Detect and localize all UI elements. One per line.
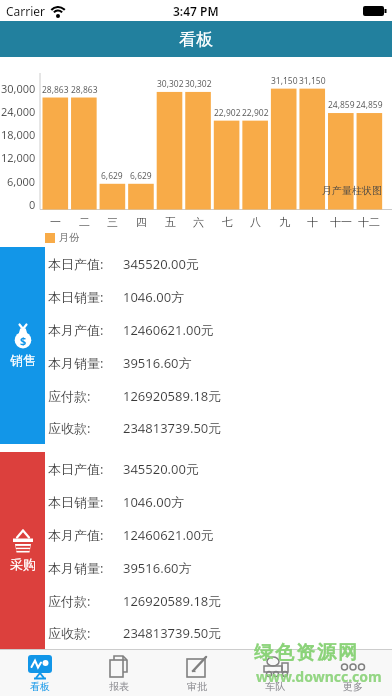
button[interactable]: 采购: [0, 452, 45, 649]
staticText: 十二: [358, 215, 380, 229]
staticText: 五: [165, 215, 176, 229]
button[interactable]: $: [0, 247, 45, 444]
staticText: 234813739.50元: [123, 624, 222, 642]
button[interactable]: 本月产值:: [45, 313, 392, 346]
staticText: 八: [250, 215, 261, 229]
staticText: $: [20, 333, 27, 348]
staticText: 十: [307, 215, 318, 229]
staticText: 车队: [265, 680, 285, 693]
staticText: 二: [79, 215, 90, 229]
staticText: 本月销量:: [48, 559, 104, 577]
button[interactable]: 更多: [314, 650, 392, 696]
staticText: 销售: [10, 352, 36, 368]
staticText: 24,000: [1, 104, 36, 119]
staticText: 3:47 PM: [173, 3, 219, 19]
staticText: 本月产值:: [48, 321, 104, 339]
staticText: 126920589.18元: [123, 592, 222, 610]
staticText: 采购: [10, 556, 36, 572]
button[interactable]: 审批: [158, 650, 236, 696]
button[interactable]: 本月产值:: [45, 518, 392, 551]
staticText: 30,302: [185, 78, 212, 90]
staticText: 30,302: [157, 78, 184, 90]
staticText: 本月产值:: [48, 526, 104, 544]
staticText: 31,150: [299, 75, 326, 87]
staticText: 应付款:: [48, 592, 91, 610]
staticText: 234813739.50元: [123, 419, 222, 437]
staticText: 39516.60方: [123, 559, 192, 577]
staticText: 22,902: [214, 107, 241, 119]
staticText: 28,863: [42, 84, 69, 96]
staticText: 0: [29, 197, 36, 212]
staticText: 30,000: [1, 81, 36, 96]
staticText: 22,902: [242, 107, 269, 119]
staticText: 应收款:: [48, 624, 91, 642]
staticText: 审批: [187, 680, 207, 693]
staticText: 18,000: [1, 127, 36, 142]
staticText: 1046.00方: [123, 288, 185, 306]
button[interactable]: 本日产值:: [45, 452, 392, 485]
staticText: 四: [136, 215, 147, 229]
staticText: 24,859: [356, 99, 383, 111]
staticText: 1046.00方: [123, 493, 185, 511]
button[interactable]: 本日产值:: [45, 247, 392, 280]
staticText: www.downcc.com: [256, 667, 382, 686]
button[interactable]: 本月销量:: [45, 346, 392, 379]
staticText: 12460621.00元: [123, 526, 214, 544]
staticText: 十一: [330, 215, 352, 229]
staticText: 绿色资源网: [253, 641, 358, 665]
staticText: 本日产值:: [48, 460, 104, 478]
staticText: 6,629: [130, 170, 152, 182]
button[interactable]: 应付款:: [45, 584, 392, 617]
staticText: 本月销量:: [48, 354, 104, 372]
button[interactable]: 看板: [0, 650, 79, 696]
button[interactable]: 本日销量:: [45, 485, 392, 518]
button[interactable]: 应收款:: [45, 412, 392, 444]
staticText: 九: [279, 215, 290, 229]
staticText: 看板: [179, 29, 213, 50]
staticText: 报表: [109, 680, 129, 693]
staticText: 看板: [30, 680, 50, 693]
button[interactable]: 应收款:: [45, 617, 392, 649]
button[interactable]: 本日销量:: [45, 280, 392, 313]
staticText: 12460621.00元: [123, 321, 214, 339]
staticText: 24,859: [328, 99, 355, 111]
staticText: 应付款:: [48, 387, 91, 405]
staticText: 28,863: [71, 84, 98, 96]
staticText: 月份: [59, 231, 79, 244]
staticText: 六: [193, 215, 204, 229]
staticText: 本日销量:: [48, 493, 104, 511]
staticText: 345520.00元: [123, 255, 199, 273]
staticText: 一: [50, 215, 61, 229]
staticText: 七: [222, 215, 233, 229]
button[interactable]: 本月销量:: [45, 551, 392, 584]
staticText: 6,000: [7, 174, 36, 189]
staticText: Carrier: [6, 3, 46, 19]
button[interactable]: 看板: [0, 21, 392, 57]
staticText: 本日产值:: [48, 255, 104, 273]
staticText: 应收款:: [48, 419, 91, 437]
staticText: 345520.00元: [123, 460, 199, 478]
staticText: 12,000: [1, 150, 36, 165]
staticText: 更多: [343, 680, 363, 693]
button[interactable]: 车队: [236, 650, 314, 696]
staticText: 三: [107, 215, 118, 229]
button[interactable]: 应付款:: [45, 379, 392, 412]
staticText: 126920589.18元: [123, 387, 222, 405]
staticText: 本日销量:: [48, 288, 104, 306]
staticText: 6,629: [101, 170, 123, 182]
staticText: 月产量柱状图: [322, 184, 382, 197]
button[interactable]: 报表: [79, 650, 158, 696]
staticText: 31,150: [271, 75, 298, 87]
staticText: 39516.60方: [123, 354, 192, 372]
